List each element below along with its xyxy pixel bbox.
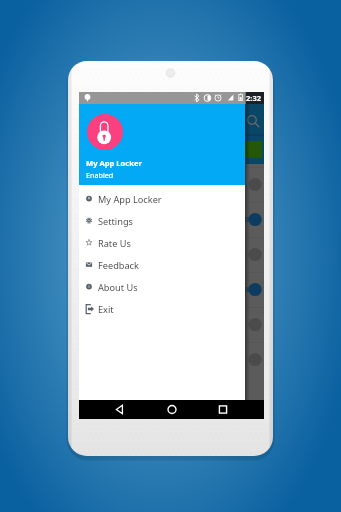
staticText: Settings xyxy=(98,215,133,228)
button[interactable]: My App Locker xyxy=(79,188,245,210)
button[interactable]: Settings xyxy=(79,210,245,232)
staticText: About Us xyxy=(98,281,138,294)
staticText: Enabled xyxy=(86,170,114,180)
button[interactable]: Recents xyxy=(212,400,234,419)
staticText: Exit xyxy=(98,303,114,316)
staticText: Rate Us xyxy=(98,237,131,250)
button[interactable]: Rate Us xyxy=(79,232,245,254)
staticText: My App Locker xyxy=(98,193,162,206)
staticText: 2:32 xyxy=(246,93,261,103)
button[interactable]: Home xyxy=(161,400,183,419)
button[interactable]: About Us xyxy=(79,276,245,298)
button[interactable]: Feedback xyxy=(79,254,245,276)
button[interactable]: Exit xyxy=(79,298,245,320)
staticText: My App Locker xyxy=(86,158,142,168)
staticText: Feedback xyxy=(98,259,139,272)
button[interactable]: Back xyxy=(109,400,131,419)
